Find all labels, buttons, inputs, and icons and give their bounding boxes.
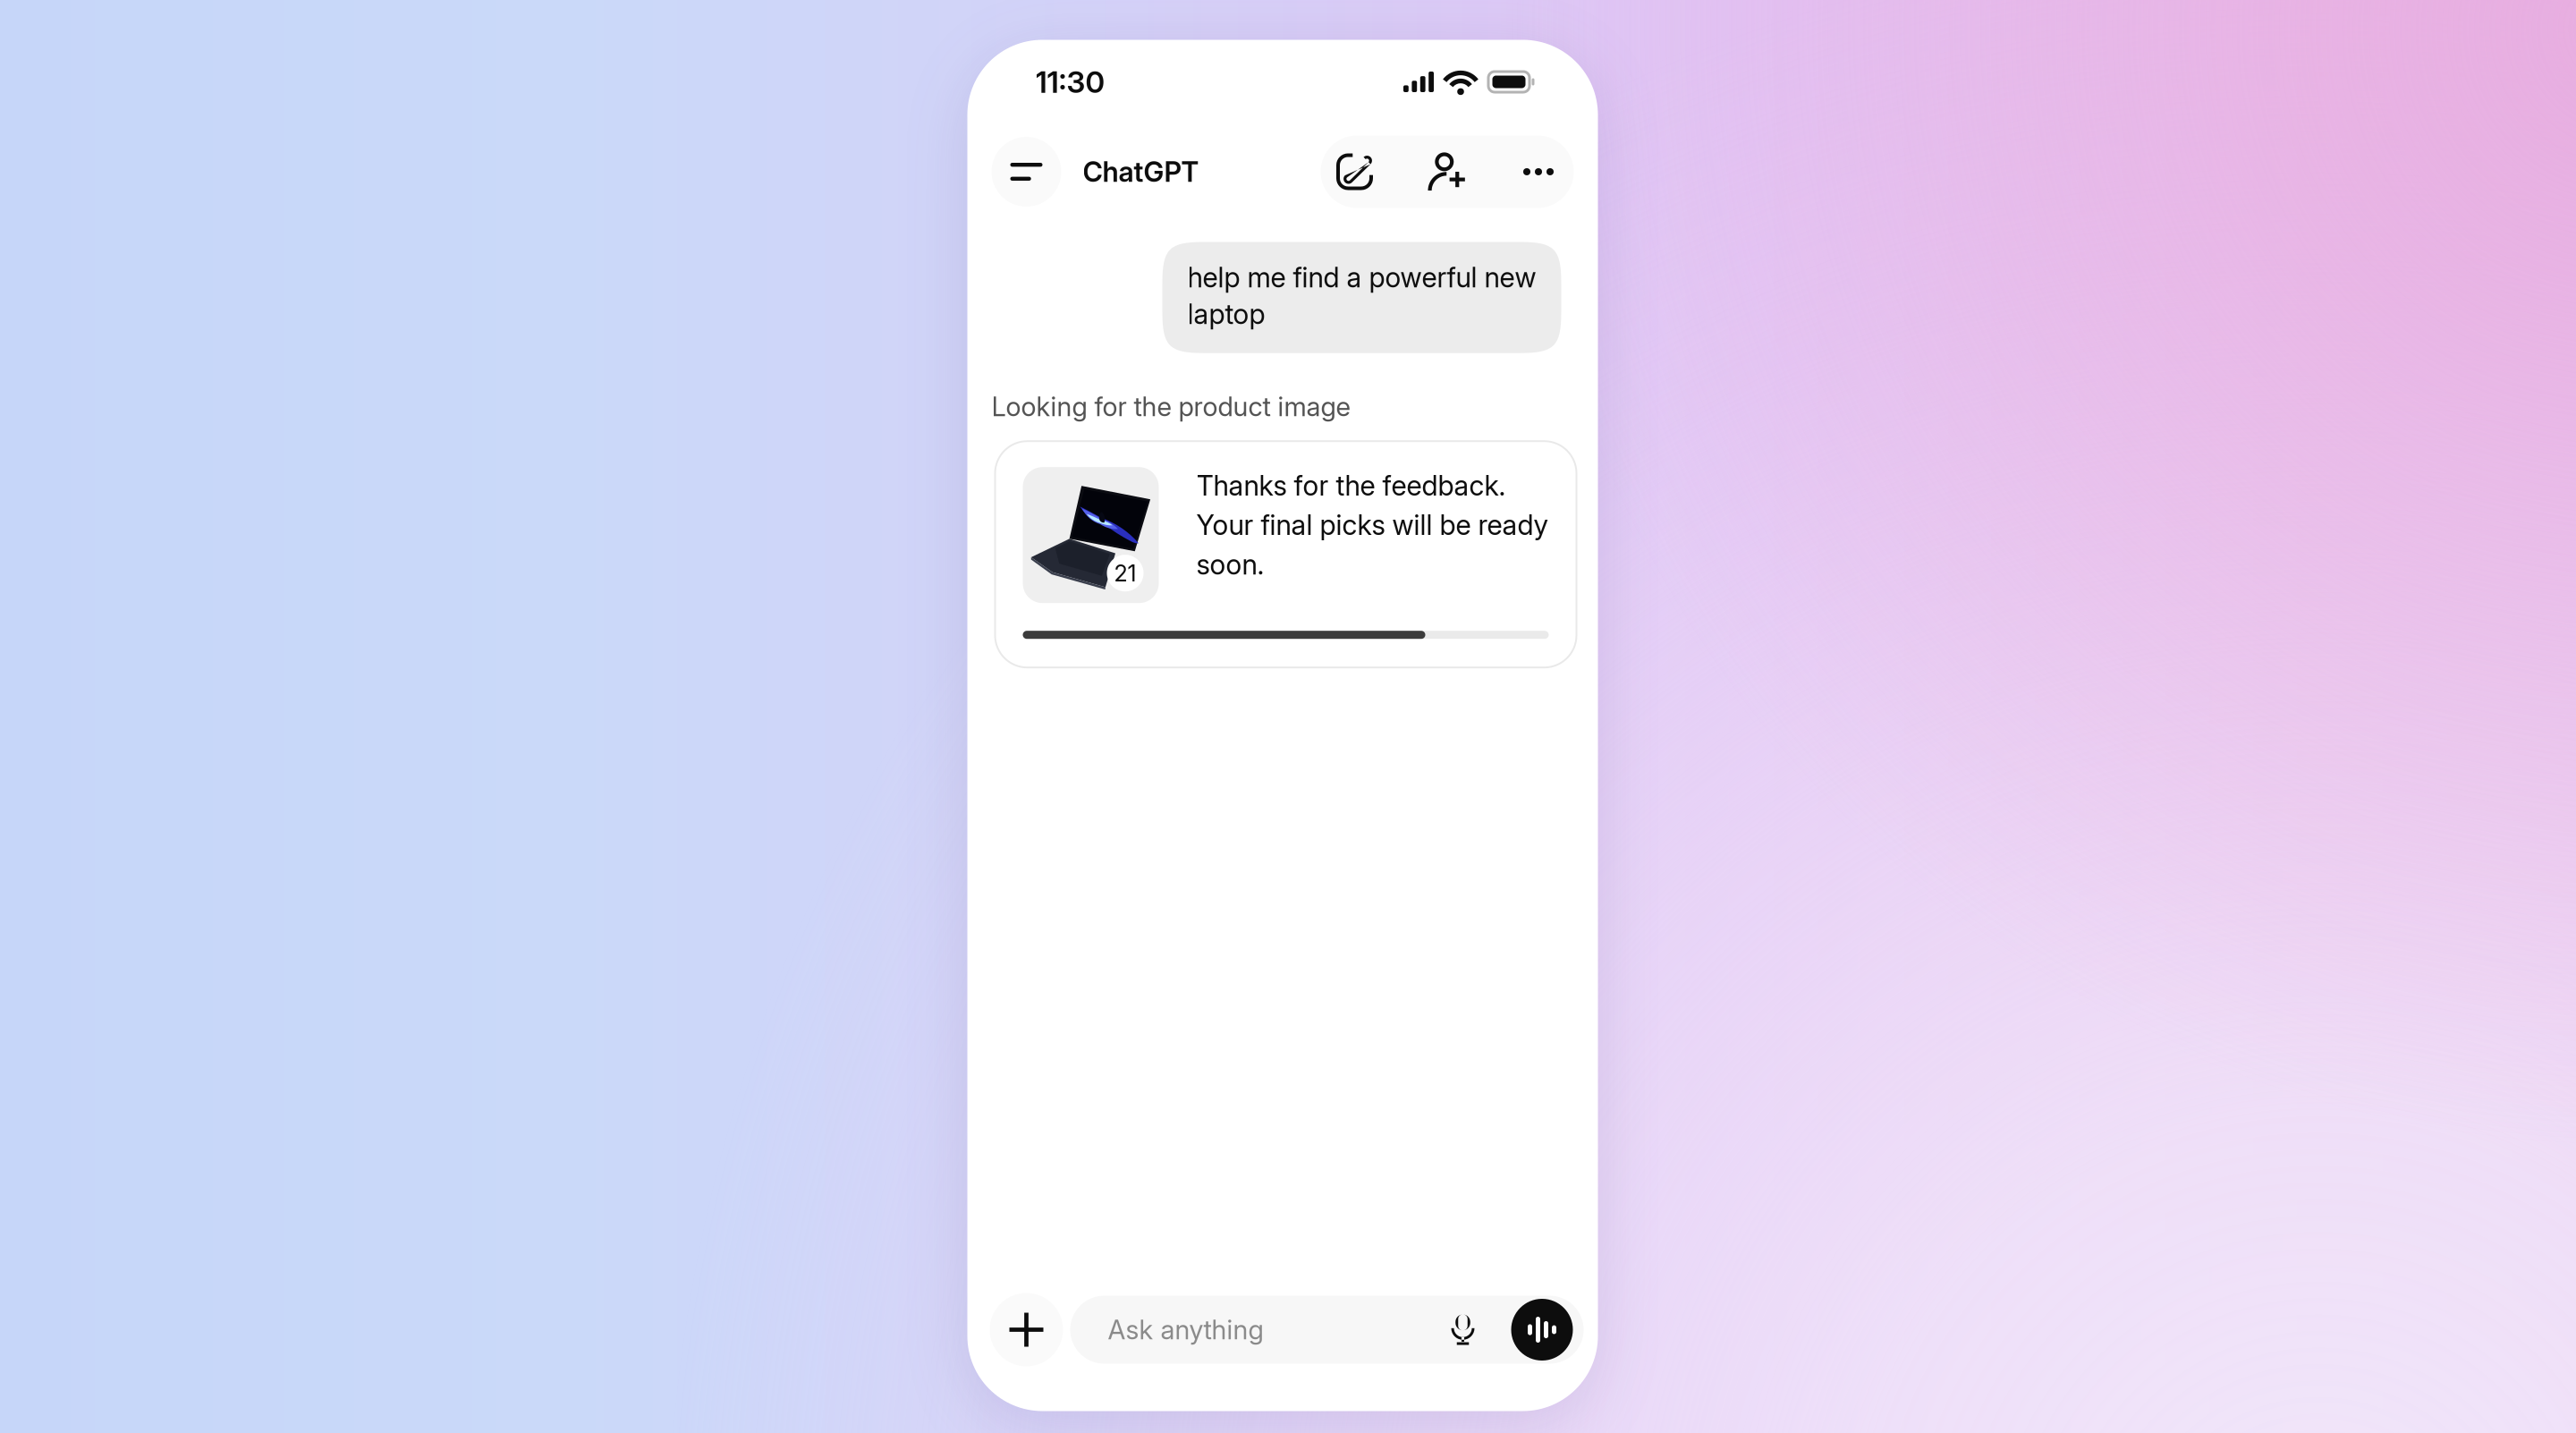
button[interactable]: More options <box>1503 136 1574 208</box>
button[interactable]: Voice mode <box>1511 1299 1573 1361</box>
staticText: 11:30 <box>1035 64 1105 100</box>
staticText: Thanks for the feedback. Your final pick… <box>1196 469 1548 581</box>
button[interactable]: New chat <box>1321 136 1389 208</box>
button[interactable]: Add attachment <box>990 1293 1063 1366</box>
button[interactable]: Dictate <box>1415 1296 1511 1364</box>
button[interactable]: Menu <box>991 137 1061 207</box>
staticText: help me find a powerful new laptop <box>1187 261 1536 331</box>
staticText: Ask anything <box>1108 1314 1263 1346</box>
button[interactable]: Add people <box>1389 136 1503 208</box>
staticText: ChatGPT <box>1083 155 1199 188</box>
staticText: Looking for the product image <box>991 391 1350 422</box>
staticText: 21 <box>1114 559 1136 587</box>
